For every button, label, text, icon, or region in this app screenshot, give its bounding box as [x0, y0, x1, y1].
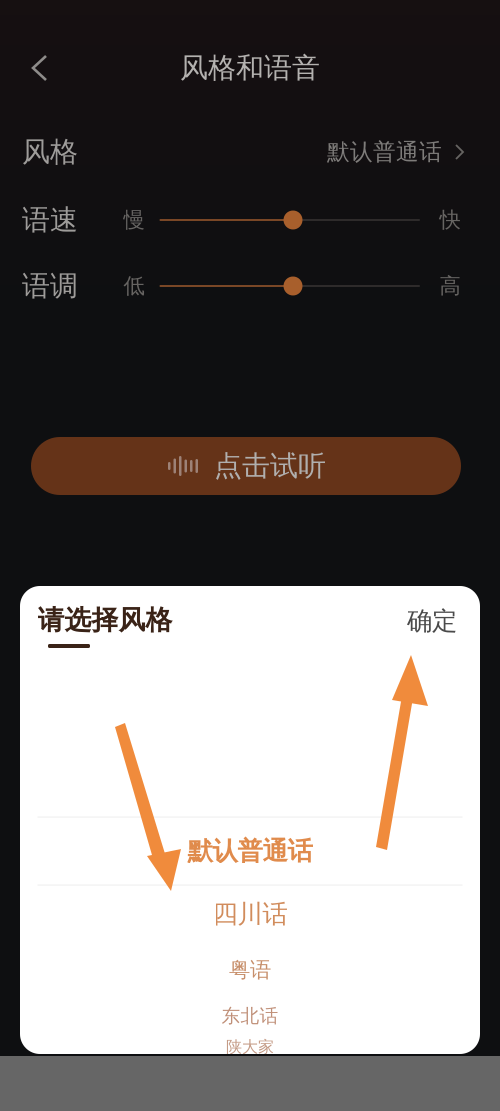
staticText: 四川话: [212, 898, 287, 929]
staticText: 默认普通话: [187, 835, 312, 866]
staticText: 粤语: [229, 957, 271, 983]
staticText: 语调: [22, 269, 78, 303]
staticText: 风格: [22, 135, 78, 169]
button[interactable]: 默认普通话: [150, 831, 350, 871]
staticText: 快: [439, 207, 460, 233]
staticText: 默认普通话: [327, 138, 442, 166]
staticText: 慢: [123, 207, 144, 233]
staticText: 点击试听: [214, 449, 326, 483]
staticText: 风格和语音: [180, 51, 320, 85]
button[interactable]: 东北话: [185, 1003, 315, 1029]
staticText: 语速: [22, 203, 78, 237]
staticText: 确定: [407, 605, 457, 636]
staticText: 东北话: [221, 1004, 278, 1027]
button[interactable]: 默认普通话: [327, 130, 465, 174]
button[interactable]: 四川话: [170, 897, 330, 931]
button[interactable]: Back: [16, 43, 64, 93]
button[interactable]: 确定: [402, 604, 462, 638]
staticText: 低: [123, 273, 144, 299]
staticText: 陕大家: [226, 1037, 274, 1057]
button[interactable]: 点击试听: [31, 437, 461, 495]
staticText: 高: [439, 273, 460, 299]
button[interactable]: 粤语: [180, 955, 320, 985]
staticText: 请选择风格: [37, 604, 172, 636]
